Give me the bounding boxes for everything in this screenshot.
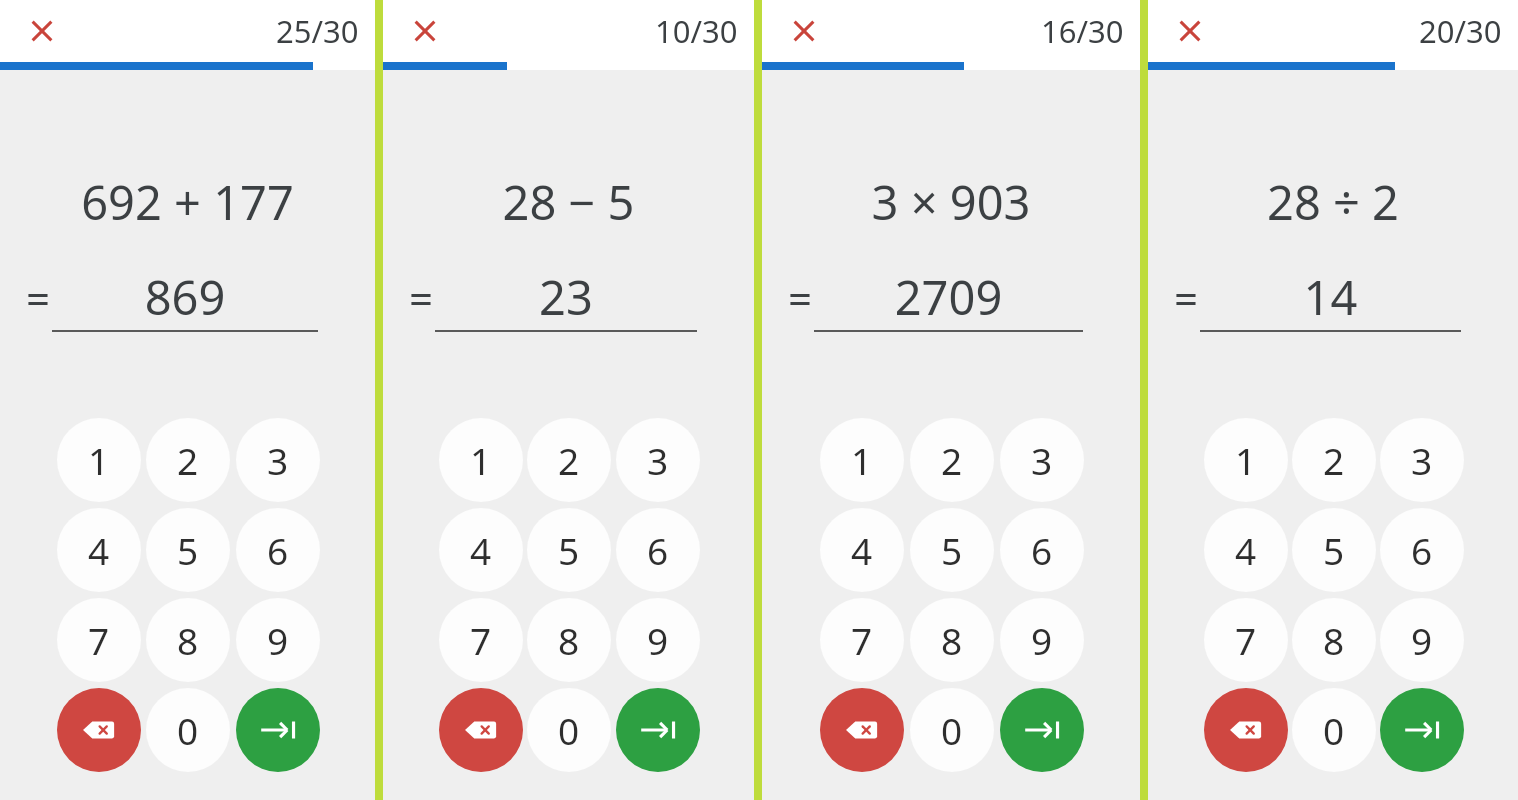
staticText: 7 — [851, 615, 873, 665]
button[interactable]: 0 — [146, 688, 230, 772]
button[interactable]: 4 — [1204, 508, 1288, 592]
staticText: 6 — [1411, 525, 1433, 575]
staticText: 1 — [1235, 435, 1257, 485]
other: Backspace — [1225, 709, 1267, 751]
staticText: 2 — [941, 435, 963, 485]
button[interactable]: 7 — [820, 598, 904, 682]
other: Submit answer — [1401, 709, 1443, 751]
button[interactable]: Submit answer — [236, 688, 320, 772]
staticText: 3 — [267, 435, 289, 485]
button[interactable]: 6 — [1380, 508, 1464, 592]
staticText: 25/30 — [276, 10, 359, 52]
button[interactable]: 3 — [1380, 418, 1464, 502]
button[interactable]: 2 — [527, 418, 611, 502]
button[interactable]: 8 — [527, 598, 611, 682]
button[interactable]: Backspace — [1204, 688, 1288, 772]
staticText: 7 — [1235, 615, 1257, 665]
other: Backspace — [460, 709, 502, 751]
staticText: 3 — [1031, 435, 1053, 485]
button[interactable]: 2 — [910, 418, 994, 502]
staticText: = — [1174, 269, 1199, 326]
button[interactable]: 4 — [57, 508, 141, 592]
staticText: 7 — [88, 615, 110, 665]
staticText: 8 — [941, 615, 963, 665]
button[interactable]: 3 — [236, 418, 320, 502]
staticText: 6 — [1031, 525, 1053, 575]
button[interactable]: 0 — [527, 688, 611, 772]
button[interactable]: 6 — [1000, 508, 1084, 592]
button[interactable]: 1 — [820, 418, 904, 502]
button[interactable]: 8 — [146, 598, 230, 682]
button[interactable]: Submit answer — [1000, 688, 1084, 772]
staticText: 16/30 — [1041, 10, 1124, 52]
button[interactable]: 2 — [1292, 418, 1376, 502]
staticText: 10/30 — [655, 10, 738, 52]
staticText: 28 ÷ 2 — [1148, 170, 1518, 234]
staticText: 5 — [558, 525, 580, 575]
staticText: 3 — [647, 435, 669, 485]
staticText: 8 — [558, 615, 580, 665]
button[interactable]: 0 — [910, 688, 994, 772]
button[interactable]: Submit answer — [1380, 688, 1464, 772]
staticText: = — [409, 269, 434, 326]
button[interactable]: Backspace — [57, 688, 141, 772]
button[interactable]: Close — [18, 7, 66, 55]
button[interactable]: Backspace — [820, 688, 904, 772]
button[interactable]: 2 — [146, 418, 230, 502]
staticText: 2709 — [814, 265, 1083, 329]
staticText: 3 × 903 — [762, 170, 1140, 234]
staticText: 692 + 177 — [0, 170, 375, 234]
staticText: 0 — [177, 705, 199, 755]
staticText: 1 — [88, 435, 110, 485]
staticText: 0 — [558, 705, 580, 755]
other: Submit answer — [1021, 709, 1063, 751]
staticText: 4 — [851, 525, 873, 575]
button[interactable]: 7 — [1204, 598, 1288, 682]
button[interactable]: 4 — [439, 508, 523, 592]
staticText: 9 — [267, 615, 289, 665]
button[interactable]: 9 — [616, 598, 700, 682]
button[interactable]: 5 — [910, 508, 994, 592]
button[interactable]: 9 — [1380, 598, 1464, 682]
staticText: 5 — [1323, 525, 1345, 575]
staticText: 6 — [267, 525, 289, 575]
button[interactable]: 5 — [527, 508, 611, 592]
button[interactable]: Submit answer — [616, 688, 700, 772]
staticText: 9 — [647, 615, 669, 665]
button[interactable]: 1 — [439, 418, 523, 502]
staticText: 8 — [177, 615, 199, 665]
button[interactable]: Backspace — [439, 688, 523, 772]
button[interactable]: 5 — [146, 508, 230, 592]
button[interactable]: Close — [780, 7, 828, 55]
button[interactable]: 1 — [1204, 418, 1288, 502]
staticText: 4 — [88, 525, 110, 575]
other: Submit answer — [257, 709, 299, 751]
button[interactable]: 0 — [1292, 688, 1376, 772]
button[interactable]: 8 — [910, 598, 994, 682]
button[interactable]: 7 — [439, 598, 523, 682]
button[interactable]: 9 — [236, 598, 320, 682]
staticText: 0 — [941, 705, 963, 755]
staticText: 9 — [1031, 615, 1053, 665]
staticText: 4 — [470, 525, 492, 575]
button[interactable]: 4 — [820, 508, 904, 592]
button[interactable]: 3 — [1000, 418, 1084, 502]
other: Backspace — [78, 709, 120, 751]
staticText: 5 — [177, 525, 199, 575]
staticText: 0 — [1323, 705, 1345, 755]
button[interactable]: 8 — [1292, 598, 1376, 682]
button[interactable]: 6 — [236, 508, 320, 592]
staticText: 14 — [1200, 265, 1461, 329]
button[interactable]: Close — [401, 7, 449, 55]
button[interactable]: 1 — [57, 418, 141, 502]
staticText: 6 — [647, 525, 669, 575]
button[interactable]: 3 — [616, 418, 700, 502]
button[interactable]: 6 — [616, 508, 700, 592]
button[interactable]: Close — [1166, 7, 1214, 55]
staticText: 2 — [558, 435, 580, 485]
button[interactable]: 7 — [57, 598, 141, 682]
button[interactable]: 9 — [1000, 598, 1084, 682]
staticText: 2 — [177, 435, 199, 485]
button[interactable]: 5 — [1292, 508, 1376, 592]
staticText: 23 — [435, 265, 697, 329]
